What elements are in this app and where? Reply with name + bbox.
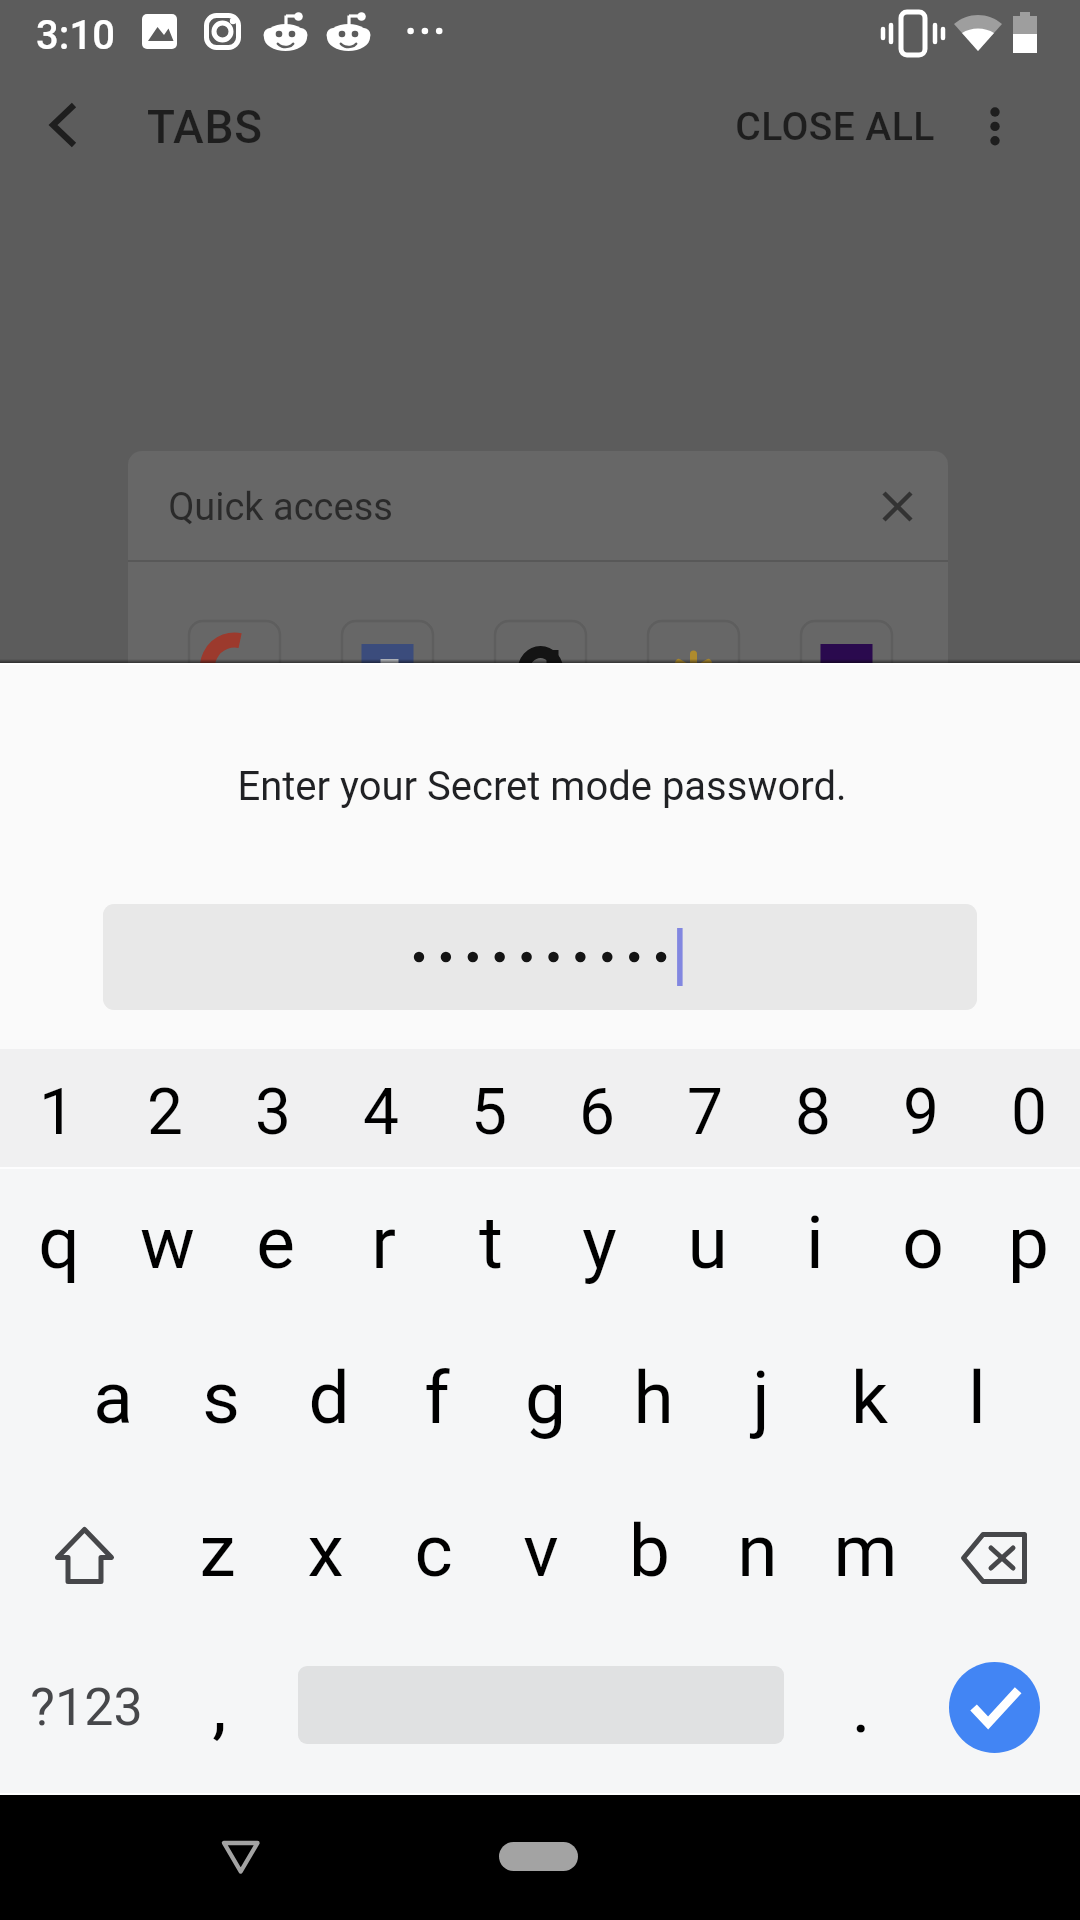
staticText: g [525, 1355, 566, 1441]
button[interactable]: e [221, 1169, 329, 1324]
staticText: CLOSE ALL [735, 104, 935, 150]
button[interactable]: n [703, 1479, 811, 1634]
button[interactable]: . [807, 1634, 915, 1793]
button[interactable]: 9 [864, 1049, 972, 1169]
staticText: o [902, 1200, 944, 1286]
staticText: l [968, 1355, 986, 1441]
staticText: f [424, 1355, 450, 1441]
staticText: 4 [363, 1075, 399, 1150]
button[interactable]: u [653, 1169, 761, 1324]
staticText: j [752, 1355, 770, 1441]
button[interactable]: h [599, 1324, 707, 1479]
button[interactable]: w [113, 1169, 221, 1324]
button[interactable]: 5 [432, 1049, 540, 1169]
staticText: a [93, 1355, 133, 1441]
button[interactable]: p [977, 1169, 1080, 1324]
button[interactable]: v [487, 1479, 595, 1634]
staticText: q [38, 1200, 80, 1286]
button[interactable]: o [869, 1169, 977, 1324]
button[interactable]: 0 [972, 1049, 1080, 1169]
staticText: s [202, 1355, 240, 1441]
staticText: t [479, 1200, 503, 1286]
button[interactable]: a [59, 1324, 167, 1479]
button[interactable]: ?123 [16, 1634, 156, 1793]
button[interactable]: 2 [108, 1049, 216, 1169]
button[interactable]: 6 [540, 1049, 648, 1169]
button[interactable]: d [275, 1324, 383, 1479]
button[interactable]: x [271, 1479, 379, 1634]
staticText: m [833, 1508, 898, 1594]
button[interactable]: k [815, 1324, 923, 1479]
button[interactable]: 8 [756, 1049, 864, 1169]
staticText: z [199, 1508, 236, 1594]
button[interactable]: f [383, 1324, 491, 1479]
staticText: ?123 [30, 1677, 143, 1738]
button[interactable]: Backspace [919, 1479, 1080, 1634]
staticText: h [633, 1355, 674, 1441]
staticText: 3:10 [36, 12, 115, 59]
staticText: k [851, 1355, 888, 1441]
staticText: p [1008, 1200, 1049, 1286]
staticText: 3 [255, 1075, 291, 1150]
button[interactable]: t [437, 1169, 545, 1324]
button[interactable]: j [707, 1324, 815, 1479]
button[interactable]: c [379, 1479, 487, 1634]
button[interactable]: Close quick access [867, 476, 927, 536]
button[interactable]: Back [25, 88, 101, 164]
staticText: TABS [147, 100, 263, 154]
button[interactable]: , [164, 1634, 272, 1793]
staticText: 0 [1011, 1075, 1047, 1150]
staticText: 6 [579, 1075, 615, 1150]
staticText: y [582, 1200, 617, 1286]
button[interactable]: Back [205, 1805, 277, 1877]
button[interactable]: CLOSE ALL [715, 88, 955, 164]
button[interactable]: y [545, 1169, 653, 1324]
button[interactable] [103, 904, 977, 1010]
staticText: Quick access [168, 485, 393, 530]
button[interactable]: r [329, 1169, 437, 1324]
staticText: x [307, 1508, 344, 1594]
button[interactable]: Home [499, 1842, 578, 1871]
staticText: b [629, 1508, 670, 1594]
staticText: Enter your Secret mode password. [237, 763, 847, 810]
staticText: . [851, 1664, 871, 1750]
button[interactable]: More options [957, 86, 1033, 162]
button[interactable]: 1 [0, 1049, 108, 1169]
staticText: 8 [795, 1075, 831, 1150]
staticText: v [523, 1508, 559, 1594]
staticText: r [371, 1200, 396, 1286]
button[interactable]: Enter [949, 1662, 1040, 1753]
staticText: 9 [903, 1075, 939, 1150]
button[interactable]: i [761, 1169, 869, 1324]
button[interactable]: m [811, 1479, 919, 1634]
staticText: e [256, 1200, 295, 1286]
button[interactable]: z [163, 1479, 271, 1634]
button[interactable]: 3 [216, 1049, 324, 1169]
button[interactable]: s [167, 1324, 275, 1479]
staticText: n [737, 1508, 778, 1594]
staticText: 1 [39, 1075, 75, 1150]
staticText: c [414, 1508, 453, 1594]
button[interactable]: l [923, 1324, 1031, 1479]
staticText: u [687, 1200, 728, 1286]
button[interactable]: 7 [648, 1049, 756, 1169]
button[interactable]: Shift [0, 1479, 163, 1634]
staticText: , [212, 1663, 227, 1749]
button[interactable]: b [595, 1479, 703, 1634]
button[interactable]: q [5, 1169, 113, 1324]
staticText: 7 [687, 1075, 723, 1150]
staticText: i [806, 1200, 824, 1286]
button[interactable]: 4 [324, 1049, 432, 1169]
staticText: 2 [147, 1075, 183, 1150]
staticText: d [308, 1355, 350, 1441]
button[interactable]: g [491, 1324, 599, 1479]
staticText: 5 [471, 1075, 507, 1150]
staticText: w [140, 1200, 195, 1286]
